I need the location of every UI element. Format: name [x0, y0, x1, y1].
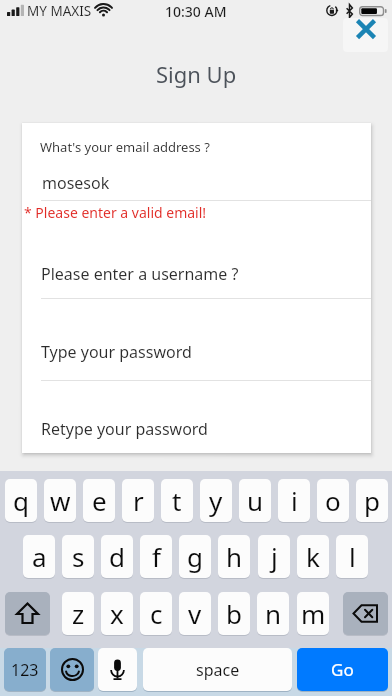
staticText: z: [72, 596, 85, 631]
button[interactable]: m: [297, 592, 329, 635]
button[interactable]: a: [23, 535, 55, 578]
staticText: x: [110, 596, 124, 631]
button[interactable]: Emoji: [50, 648, 94, 691]
staticText: a: [32, 539, 47, 574]
staticText: j: [271, 539, 278, 574]
staticText: Type your password: [41, 341, 192, 363]
staticText: k: [306, 539, 320, 574]
button[interactable]: k: [297, 535, 329, 578]
button[interactable]: f: [140, 535, 172, 578]
button[interactable]: Dictate: [98, 648, 137, 691]
staticText: 10:30 AM: [165, 2, 227, 21]
staticText: h: [226, 539, 243, 574]
button[interactable]: t: [161, 479, 193, 522]
staticText: Please enter a username ?: [41, 263, 239, 285]
staticText: Go: [331, 658, 354, 681]
staticText: s: [72, 539, 85, 574]
staticText: l: [349, 539, 356, 574]
button[interactable]: e: [83, 479, 115, 522]
button[interactable]: w: [44, 479, 76, 522]
button[interactable]: u: [239, 479, 271, 522]
staticText: u: [247, 483, 264, 518]
staticText: What's your email address ?: [40, 138, 210, 156]
staticText: r: [133, 483, 144, 518]
staticText: 123: [11, 659, 39, 681]
staticText: e: [92, 483, 107, 518]
button[interactable]: space: [143, 648, 292, 691]
staticText: f: [152, 539, 161, 574]
button[interactable]: l: [336, 535, 368, 578]
button[interactable]: o: [317, 479, 349, 522]
button[interactable]: d: [101, 535, 133, 578]
staticText: t: [172, 483, 182, 518]
button[interactable]: n: [257, 592, 289, 635]
staticText: w: [50, 483, 71, 518]
button[interactable]: z: [62, 592, 94, 635]
staticText: Retype your password: [41, 418, 208, 440]
staticText: q: [13, 483, 29, 518]
staticText: * Please enter a valid email!: [24, 203, 207, 222]
staticText: b: [226, 596, 242, 631]
button[interactable]: i: [278, 479, 310, 522]
button[interactable]: p: [356, 479, 388, 522]
button[interactable]: Shift: [5, 592, 50, 635]
button[interactable]: x: [101, 592, 133, 635]
staticText: v: [188, 596, 202, 631]
button[interactable]: Go: [297, 648, 388, 691]
staticText: c: [150, 596, 163, 631]
staticText: space: [196, 659, 240, 681]
staticText: p: [364, 483, 380, 518]
button[interactable]: h: [218, 535, 250, 578]
button[interactable]: s: [62, 535, 94, 578]
button[interactable]: c: [140, 592, 172, 635]
staticText: MY MAXIS: [27, 2, 92, 20]
staticText: i: [291, 483, 298, 518]
staticText: y: [209, 483, 223, 518]
button[interactable]: Close: [343, 18, 388, 52]
button[interactable]: b: [218, 592, 250, 635]
staticText: Sign Up: [156, 59, 237, 89]
button[interactable]: 123: [4, 648, 46, 691]
staticText: n: [265, 596, 282, 631]
staticText: g: [187, 539, 203, 574]
staticText: o: [325, 483, 341, 518]
button[interactable]: q: [5, 479, 37, 522]
staticText: d: [109, 539, 125, 574]
button[interactable]: g: [179, 535, 211, 578]
button[interactable]: Backspace: [343, 592, 388, 635]
staticText: mosesok: [42, 172, 110, 194]
button[interactable]: v: [179, 592, 211, 635]
button[interactable]: j: [258, 535, 290, 578]
button[interactable]: r: [122, 479, 154, 522]
staticText: m: [301, 596, 326, 631]
button[interactable]: y: [200, 479, 232, 522]
